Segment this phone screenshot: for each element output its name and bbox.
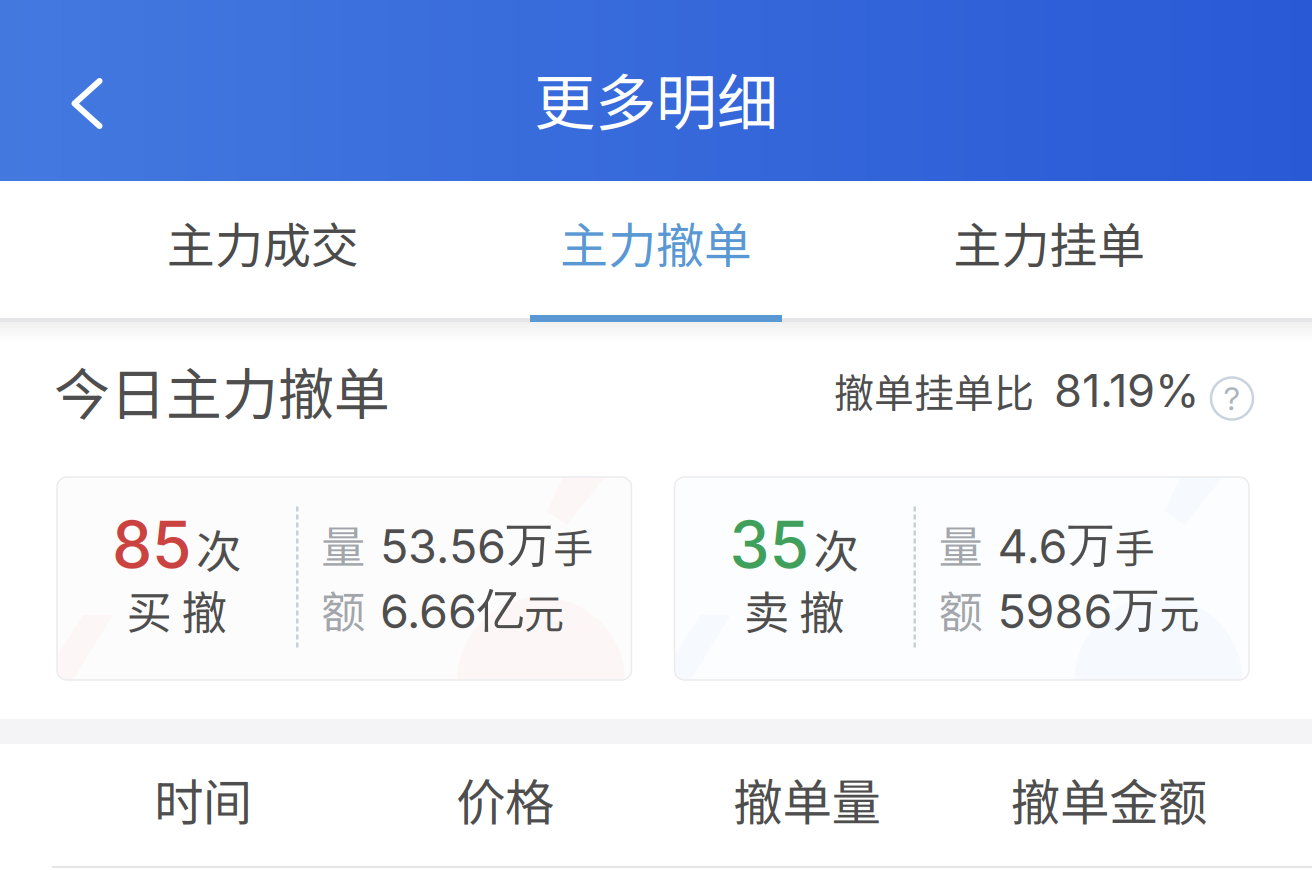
staticText: 更多明细 (534, 54, 778, 143)
button[interactable]: 主力挂单 (853, 181, 1246, 303)
staticText: 主力成交 (167, 207, 359, 277)
staticText: 元 (524, 582, 564, 640)
staticText: 卖 撤 (744, 577, 844, 642)
staticText: 买 撤 (126, 577, 226, 642)
staticText: 4.6万 (997, 516, 1114, 575)
staticText: 额 (321, 577, 365, 641)
staticText: 手 (553, 517, 593, 575)
staticText: 6.66亿 (380, 581, 524, 640)
staticText: 53.56万 (380, 516, 553, 575)
staticText: 撤单量 (733, 763, 880, 835)
staticText: 主力挂单 (953, 207, 1145, 277)
button[interactable]: What is this ratio (1200, 361, 1253, 419)
staticText: 85 (112, 506, 192, 583)
staticText: 今日主力撤单 (54, 350, 390, 431)
staticText: 量 (321, 512, 365, 576)
staticText: 81.19% (1054, 363, 1200, 418)
staticText: 额 (938, 577, 982, 641)
staticText: 主力撤单 (560, 207, 752, 277)
button[interactable]: 主力撤单 (459, 181, 853, 303)
staticText: 撤单金额 (1011, 763, 1207, 835)
staticText: 价格 (456, 763, 554, 835)
staticText: 时间 (154, 763, 252, 835)
staticText: 次 (196, 516, 241, 581)
staticText: ? (1223, 379, 1240, 418)
staticText: 元 (1159, 582, 1199, 640)
staticText: 5986万 (997, 581, 1159, 640)
staticText: 量 (938, 512, 982, 576)
button[interactable]: Back (29, 19, 145, 161)
staticText: 35 (729, 506, 809, 583)
staticText: 手 (1114, 517, 1154, 575)
button[interactable]: 主力成交 (66, 181, 459, 303)
staticText: 撤单挂单比 (834, 361, 1034, 419)
staticText: 次 (813, 516, 858, 581)
